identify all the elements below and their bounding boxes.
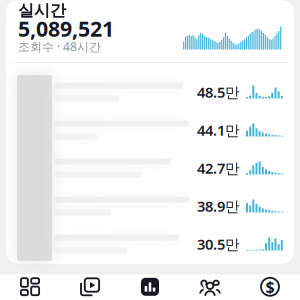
- button[interactable]: 개요: [0, 274, 60, 300]
- button[interactable]: 동영상: [60, 274, 120, 300]
- button[interactable]: 30.5만: [6, 225, 294, 263]
- button[interactable]: 수익: [240, 274, 300, 300]
- staticText: 48.5만: [197, 82, 240, 102]
- staticText: 38.9만: [197, 196, 240, 216]
- staticText: 30.5만: [197, 234, 240, 254]
- button[interactable]: 48.5만: [6, 73, 294, 111]
- staticText: 42.7만: [197, 158, 240, 178]
- staticText: 조회수 · 48시간: [18, 38, 101, 54]
- staticText: 5,089,521: [18, 14, 114, 43]
- staticText: 44.1만: [197, 120, 240, 140]
- button[interactable]: 분석: [120, 274, 180, 300]
- staticText: 실시간: [18, 1, 66, 20]
- staticText: $: [265, 276, 274, 297]
- button[interactable]: 44.1만: [6, 111, 294, 149]
- button[interactable]: 38.9만: [6, 187, 294, 225]
- button[interactable]: 팔로워: [180, 274, 240, 300]
- button[interactable]: 42.7만: [6, 149, 294, 187]
